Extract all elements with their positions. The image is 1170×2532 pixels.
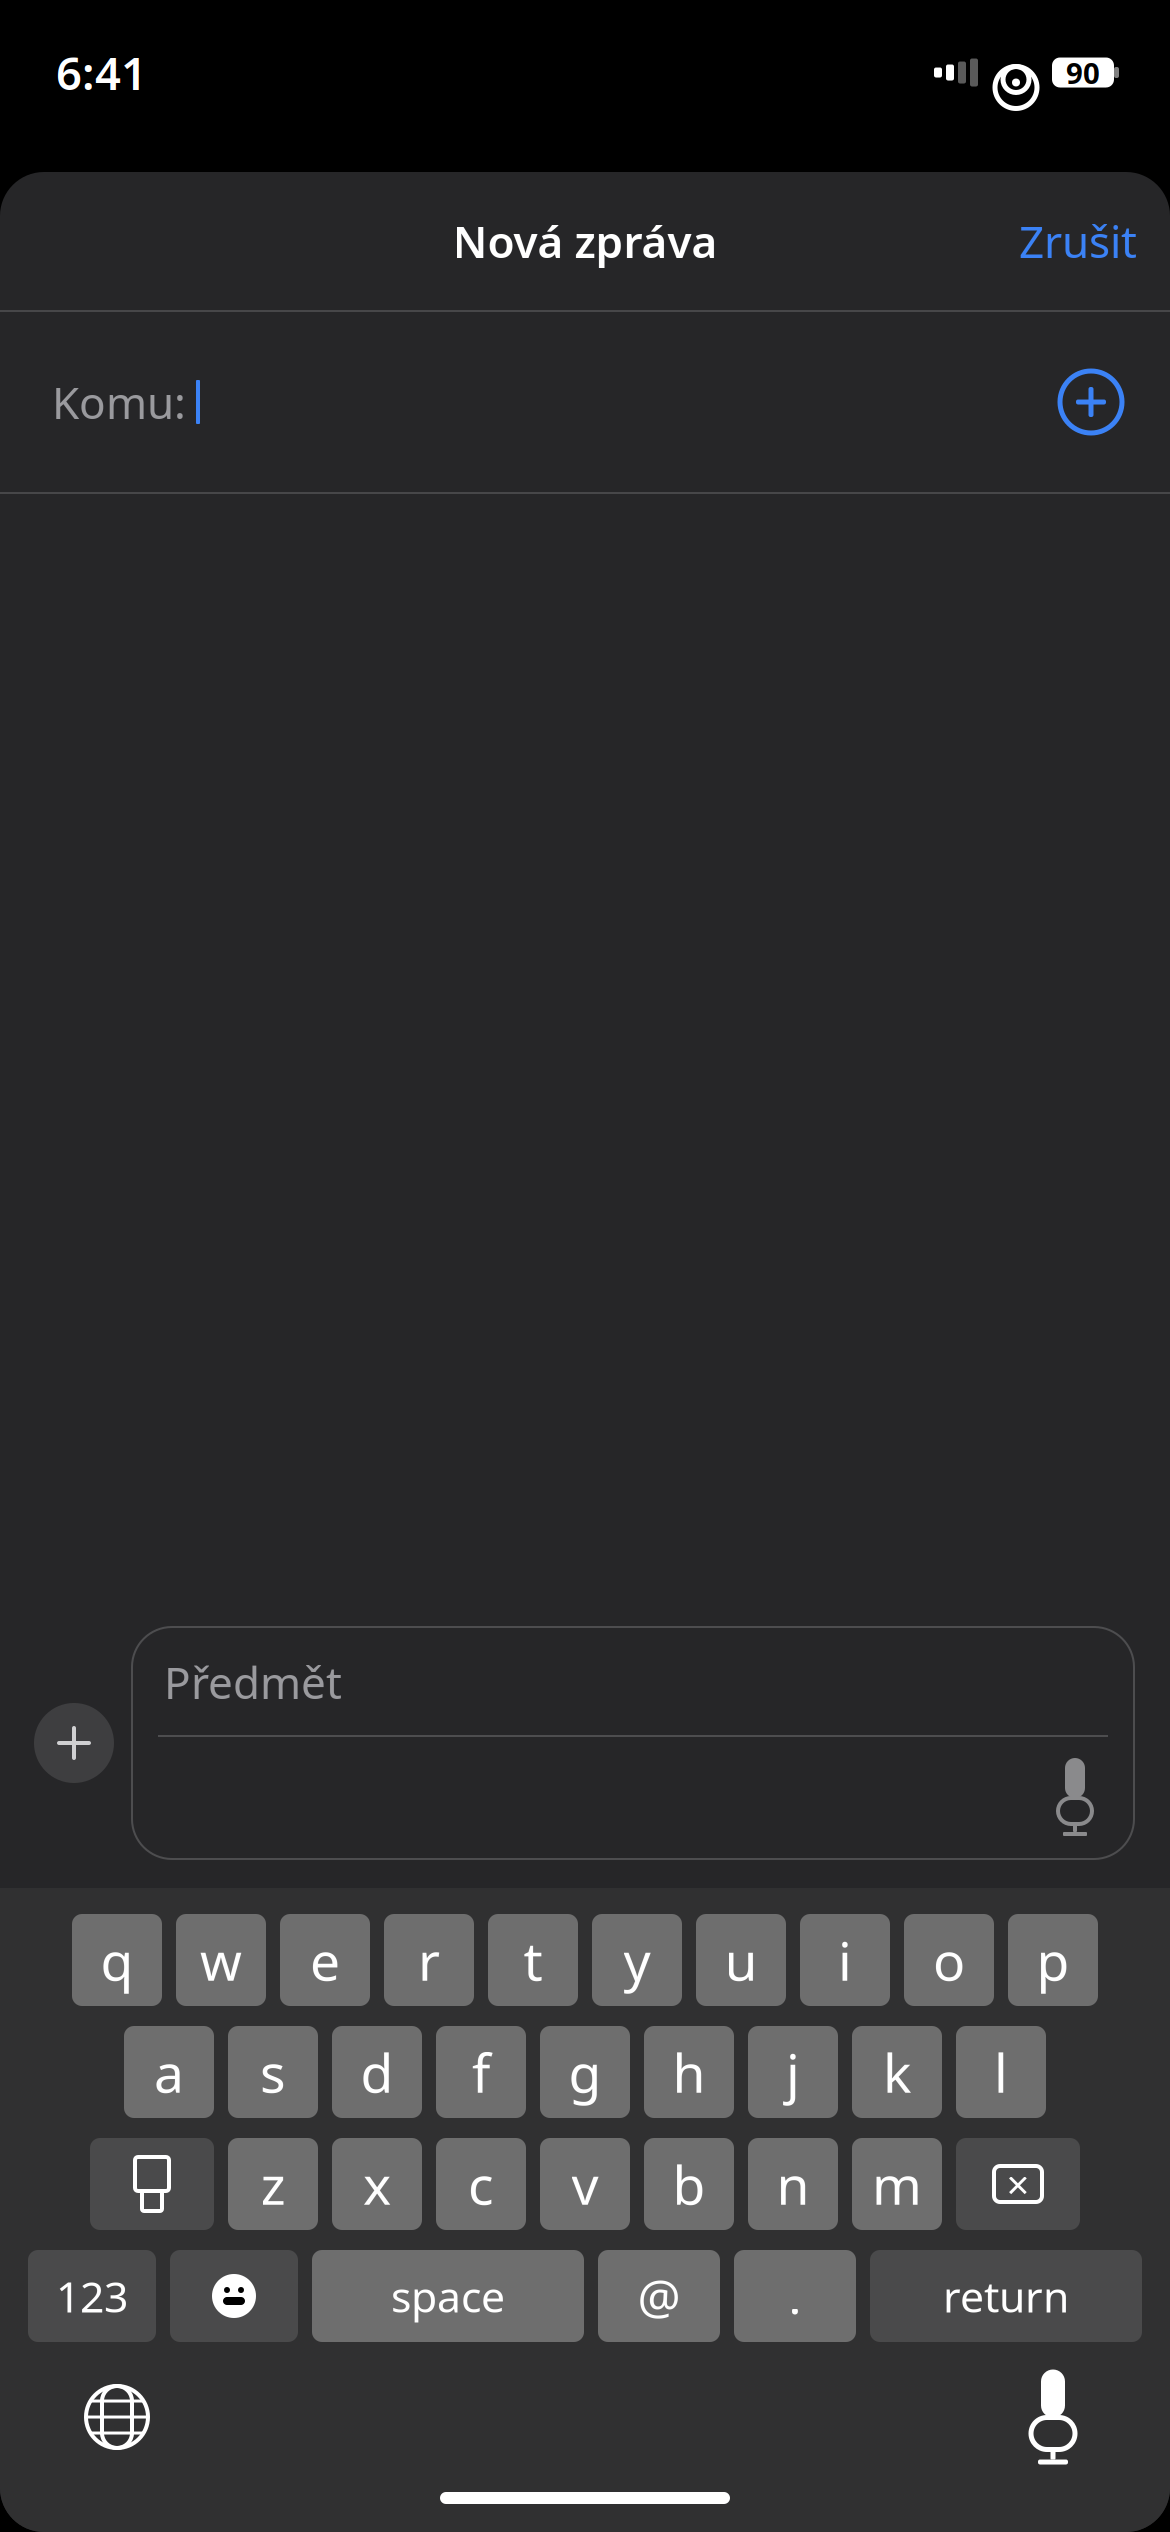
staticText: d: [360, 2037, 393, 2107]
button[interactable]: Return: [870, 2250, 1142, 2342]
staticText: b: [672, 2149, 705, 2219]
staticText: z: [260, 2149, 285, 2219]
staticText: r: [418, 1925, 440, 1995]
button[interactable]: o: [904, 1914, 994, 2006]
staticText: o: [933, 1925, 965, 1995]
button[interactable]: a: [124, 2026, 214, 2118]
staticText: Předmět: [164, 1653, 342, 1711]
button[interactable]: g: [540, 2026, 630, 2118]
staticText: g: [568, 2037, 601, 2107]
staticText: j: [786, 2037, 800, 2107]
button[interactable]: t: [488, 1914, 578, 2006]
staticText: ×: [1006, 2157, 1029, 2210]
button[interactable]: q: [72, 1914, 162, 2006]
staticText: h: [672, 2037, 705, 2107]
button[interactable]: Zrušit: [1003, 200, 1153, 282]
button[interactable]: x: [332, 2138, 422, 2230]
button[interactable]: b: [644, 2138, 734, 2230]
staticText: Nová zpráva: [452, 212, 717, 270]
button[interactable]: r: [384, 1914, 474, 2006]
staticText: y: [623, 1925, 650, 1995]
button[interactable]: k: [852, 2026, 942, 2118]
button[interactable]: e: [280, 1914, 370, 2006]
button[interactable]: v: [540, 2138, 630, 2230]
staticText: a: [154, 2037, 184, 2107]
button[interactable]: d: [332, 2026, 422, 2118]
button[interactable]: l: [956, 2026, 1046, 2118]
button[interactable]: p: [1008, 1914, 1098, 2006]
staticText: e: [310, 1925, 340, 1995]
staticText: .: [788, 2264, 801, 2328]
staticText: 123: [56, 2268, 128, 2324]
button[interactable]: .: [734, 2250, 856, 2342]
button[interactable]: y: [592, 1914, 682, 2006]
button[interactable]: Emoji: [170, 2250, 298, 2342]
staticText: x: [363, 2149, 391, 2219]
staticText: q: [100, 1925, 133, 1995]
button[interactable]: s: [228, 2026, 318, 2118]
staticText: c: [468, 2149, 494, 2219]
staticText: 90: [1066, 53, 1100, 92]
staticText: Zrušit: [1019, 212, 1137, 270]
staticText: 6:41: [56, 42, 147, 103]
staticText: return: [943, 2268, 1069, 2324]
button[interactable]: u: [696, 1914, 786, 2006]
staticText: Komu:: [52, 373, 186, 431]
staticText: w: [200, 1925, 242, 1995]
staticText: k: [883, 2037, 911, 2107]
staticText: f: [472, 2037, 490, 2107]
staticText: t: [523, 1925, 542, 1995]
staticText: u: [724, 1925, 757, 1995]
button[interactable]: w: [176, 1914, 266, 2006]
staticText: p: [1036, 1925, 1069, 1995]
button[interactable]: z: [228, 2138, 318, 2230]
button[interactable]: 123: [28, 2250, 156, 2342]
staticText: s: [260, 2037, 286, 2107]
button[interactable]: Shift: [90, 2138, 214, 2230]
button[interactable]: Předmět: [132, 1627, 1134, 1859]
button[interactable]: h: [644, 2026, 734, 2118]
staticText: v: [571, 2149, 598, 2219]
button[interactable]: Add contact: [1048, 359, 1134, 445]
button[interactable]: c: [436, 2138, 526, 2230]
staticText: l: [994, 2037, 1008, 2107]
button[interactable]: i: [800, 1914, 890, 2006]
button[interactable]: @: [598, 2250, 720, 2342]
button[interactable]: Dictation: [998, 2362, 1108, 2472]
button[interactable]: Delete: [956, 2138, 1080, 2230]
staticText: i: [838, 1925, 852, 1995]
button[interactable]: Next keyboard: [62, 2362, 172, 2472]
staticText: n: [776, 2149, 809, 2219]
button[interactable]: space: [312, 2250, 584, 2342]
button[interactable]: j: [748, 2026, 838, 2118]
staticText: @: [637, 2264, 680, 2328]
button[interactable]: Add attachment: [26, 1695, 122, 1791]
button[interactable]: f: [436, 2026, 526, 2118]
button[interactable]: n: [748, 2138, 838, 2230]
button[interactable]: m: [852, 2138, 942, 2230]
staticText: space: [391, 2268, 505, 2324]
staticText: m: [872, 2149, 922, 2219]
